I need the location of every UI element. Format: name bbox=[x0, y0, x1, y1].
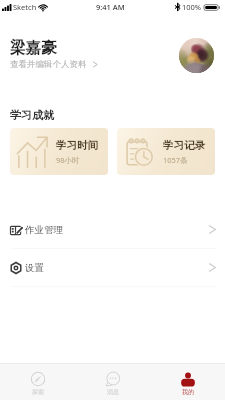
staticText: 学习成就 bbox=[10, 108, 54, 122]
staticText: 我的 bbox=[182, 388, 194, 396]
staticText: Sketch bbox=[13, 2, 37, 12]
staticText: 作业管理 bbox=[25, 224, 63, 236]
button[interactable]: 我的 bbox=[150, 368, 225, 396]
button[interactable]: 探索 bbox=[0, 368, 75, 396]
staticText: 学习记录 bbox=[163, 139, 205, 152]
staticText: 探索 bbox=[32, 388, 44, 396]
staticText: 梁嘉豪 bbox=[10, 38, 57, 58]
button[interactable]: 消息 bbox=[75, 368, 150, 396]
button[interactable]: 作业管理 bbox=[0, 211, 225, 249]
staticText: 设置 bbox=[25, 262, 44, 274]
staticText: 查看并编辑个人资料 bbox=[10, 59, 87, 70]
other: Profile photo bbox=[179, 38, 214, 73]
staticText: 9:41 AM bbox=[96, 2, 125, 12]
staticText: 消息 bbox=[107, 388, 119, 396]
staticText: 1057条 bbox=[163, 155, 188, 165]
button[interactable]: 梁嘉豪 bbox=[0, 35, 225, 70]
button[interactable]: 学习时间 bbox=[10, 128, 108, 175]
staticText: 学习时间 bbox=[56, 139, 98, 152]
staticText: 98小时 bbox=[56, 155, 80, 165]
button[interactable]: 设置 bbox=[0, 249, 225, 287]
staticText: 100% bbox=[182, 2, 202, 12]
button[interactable]: 学习记录 bbox=[117, 128, 215, 175]
